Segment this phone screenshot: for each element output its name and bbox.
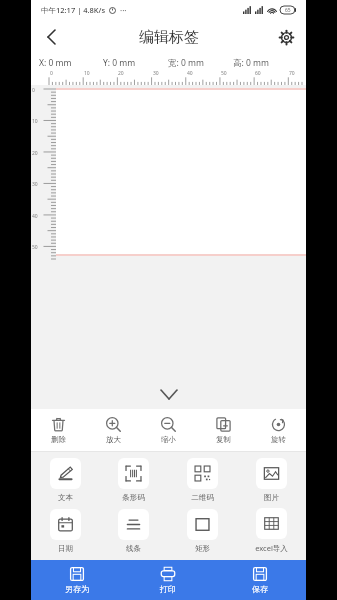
staticText: 复制 xyxy=(216,435,231,444)
staticText: 日期 xyxy=(58,544,73,553)
staticText: 编辑标签 xyxy=(139,28,199,47)
staticText: 保存 xyxy=(252,584,268,594)
button[interactable]: 日期 xyxy=(31,509,99,553)
button[interactable]: 放大 xyxy=(86,409,141,451)
button[interactable]: Settings xyxy=(266,20,306,54)
staticText: 0 xyxy=(32,87,35,94)
button[interactable]: 图片 xyxy=(237,458,306,502)
staticText: 线条 xyxy=(126,544,141,553)
staticText: 旋转 xyxy=(271,435,286,444)
staticText: 缩小 xyxy=(161,435,176,444)
staticText: excel导入 xyxy=(255,543,288,553)
staticText: 二维码 xyxy=(191,493,214,502)
button[interactable]: 缩小 xyxy=(141,409,196,451)
button[interactable]: 矩形 xyxy=(168,509,237,553)
button[interactable]: 打印 xyxy=(122,560,214,600)
staticText: 中午12:17 | 4.8K/s xyxy=(41,5,106,15)
button[interactable]: 复制 xyxy=(196,409,251,451)
button[interactable]: Collapse xyxy=(149,385,189,403)
staticText: 0 xyxy=(50,70,53,77)
button[interactable]: 二维码 xyxy=(168,458,237,502)
staticText: 高: 0 mm xyxy=(233,57,269,69)
staticText: 70 xyxy=(289,70,295,77)
button[interactable]: 保存 xyxy=(214,560,306,600)
staticText: 放大 xyxy=(106,435,121,444)
staticText: 另存为 xyxy=(65,584,89,594)
button[interactable]: 旋转 xyxy=(251,409,306,451)
staticText: 20 xyxy=(32,150,38,157)
button[interactable]: 另存为 xyxy=(31,560,122,600)
staticText: 65 xyxy=(285,7,291,14)
staticText: 20 xyxy=(118,70,124,77)
button[interactable] xyxy=(56,88,306,256)
button[interactable]: 文本 xyxy=(31,458,99,502)
button[interactable]: 条形码 xyxy=(99,458,168,502)
staticText: 50 xyxy=(32,244,38,251)
button[interactable]: Back xyxy=(31,20,71,54)
staticText: 10 xyxy=(84,70,90,77)
button[interactable]: 线条 xyxy=(99,509,168,553)
button[interactable]: 删除 xyxy=(31,409,86,451)
staticText: ··· xyxy=(120,5,127,16)
staticText: 文本 xyxy=(58,493,73,502)
staticText: 40 xyxy=(32,213,38,220)
staticText: 60 xyxy=(255,70,261,77)
staticText: 50 xyxy=(221,70,227,77)
staticText: Y: 0 mm xyxy=(103,57,136,69)
staticText: 30 xyxy=(153,70,159,77)
staticText: X: 0 mm xyxy=(39,57,72,69)
staticText: 30 xyxy=(32,181,38,188)
staticText: 矩形 xyxy=(195,544,210,553)
staticText: 删除 xyxy=(51,435,66,444)
staticText: 条形码 xyxy=(122,493,145,502)
staticText: 10 xyxy=(32,118,38,125)
staticText: 图片 xyxy=(264,493,279,502)
button[interactable]: excel导入 xyxy=(237,508,306,553)
staticText: 宽: 0 mm xyxy=(168,57,204,69)
staticText: 打印 xyxy=(160,584,176,594)
staticText: 40 xyxy=(187,70,193,77)
